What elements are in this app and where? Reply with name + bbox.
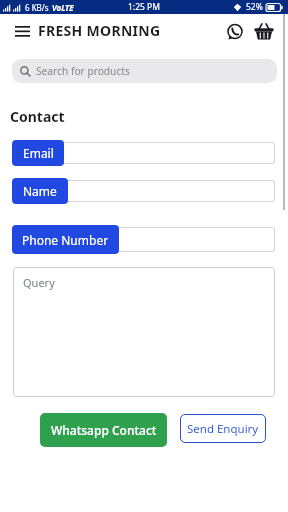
button[interactable]: Send Enquiry — [180, 414, 266, 443]
staticText: Whatsapp Contact — [51, 422, 157, 438]
staticText: Email — [23, 145, 54, 161]
staticText: Contact — [10, 107, 65, 126]
button[interactable]: Query — [13, 267, 275, 397]
button[interactable]: Whatsapp Contact — [40, 413, 167, 447]
button[interactable] — [12, 227, 275, 252]
button[interactable] — [12, 180, 275, 202]
staticText: Name — [23, 183, 57, 199]
staticText: FRESH MORNING — [38, 21, 161, 40]
staticText: Query — [23, 275, 55, 290]
button[interactable]: Phone Number — [12, 225, 119, 254]
button[interactable] — [14, 22, 34, 42]
button[interactable]: Name — [12, 178, 68, 204]
staticText: Search for products — [36, 64, 130, 78]
staticText: 1:25 PM — [128, 1, 160, 13]
button[interactable] — [224, 21, 246, 43]
staticText: Phone Number — [22, 232, 109, 248]
staticText: 6 KB/s — [25, 2, 49, 13]
staticText: 52% — [246, 1, 263, 13]
staticText: Send Enquiry — [187, 421, 259, 437]
button[interactable] — [252, 20, 276, 44]
button[interactable] — [12, 142, 275, 164]
staticText: VoLTE — [52, 2, 74, 13]
button[interactable]: Search for products — [12, 59, 277, 83]
button[interactable]: Email — [12, 140, 64, 166]
